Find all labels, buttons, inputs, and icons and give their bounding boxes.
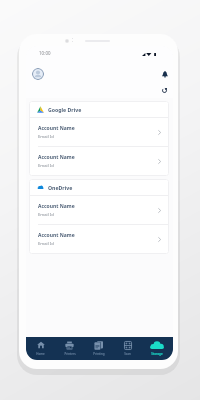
staticText: Account Name — [38, 232, 75, 239]
button[interactable]: Profile — [32, 68, 44, 80]
staticText: Google Drive — [48, 106, 82, 113]
button[interactable]: Account Name — [29, 147, 169, 176]
staticText: Home — [36, 352, 45, 356]
button[interactable]: Account Name — [29, 118, 169, 146]
staticText: Printing — [93, 352, 105, 356]
staticText: Account Name — [38, 125, 75, 132]
staticText: Email Id — [38, 163, 54, 169]
button[interactable]: Notifications — [157, 67, 172, 82]
button[interactable]: Printers — [55, 337, 84, 360]
staticText: 10:00 — [39, 50, 51, 56]
button[interactable]: Storage — [142, 337, 171, 360]
button[interactable]: Home — [26, 337, 55, 360]
staticText: Email Id — [38, 134, 54, 140]
staticText: Email Id — [38, 212, 54, 218]
button[interactable]: Scan — [113, 337, 142, 360]
staticText: Account Name — [38, 203, 75, 210]
button[interactable]: Account Name — [29, 225, 169, 254]
staticText: Scan — [124, 352, 131, 356]
button[interactable]: Account Name — [29, 196, 169, 224]
staticText: Printers — [64, 352, 76, 356]
staticText: Storage — [151, 352, 163, 356]
button[interactable]: Refresh — [157, 83, 172, 98]
button[interactable]: Printing — [84, 337, 113, 360]
staticText: OneDrive — [48, 184, 73, 191]
staticText: Email Id — [38, 241, 54, 247]
staticText: Account Name — [38, 154, 75, 161]
